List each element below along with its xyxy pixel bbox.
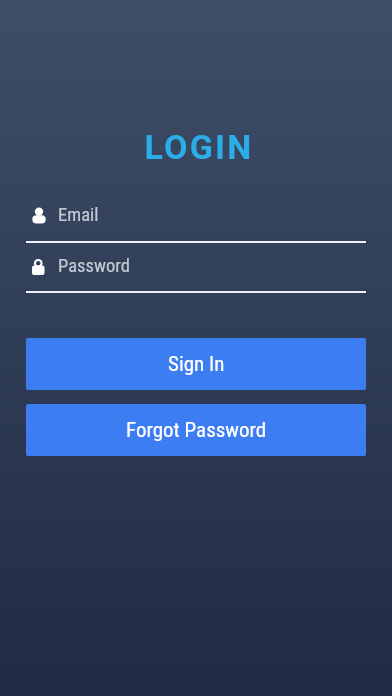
button[interactable]: Password xyxy=(26,255,366,277)
staticText: Password xyxy=(58,255,130,277)
staticText: Forgot Password xyxy=(126,418,267,443)
button[interactable]: Forgot Password xyxy=(26,404,366,456)
staticText: Sign In xyxy=(168,352,225,377)
button[interactable]: Email xyxy=(26,204,366,226)
button[interactable]: Sign In xyxy=(26,338,366,390)
staticText: LOGIN xyxy=(29,127,369,167)
staticText: Email xyxy=(58,204,99,226)
